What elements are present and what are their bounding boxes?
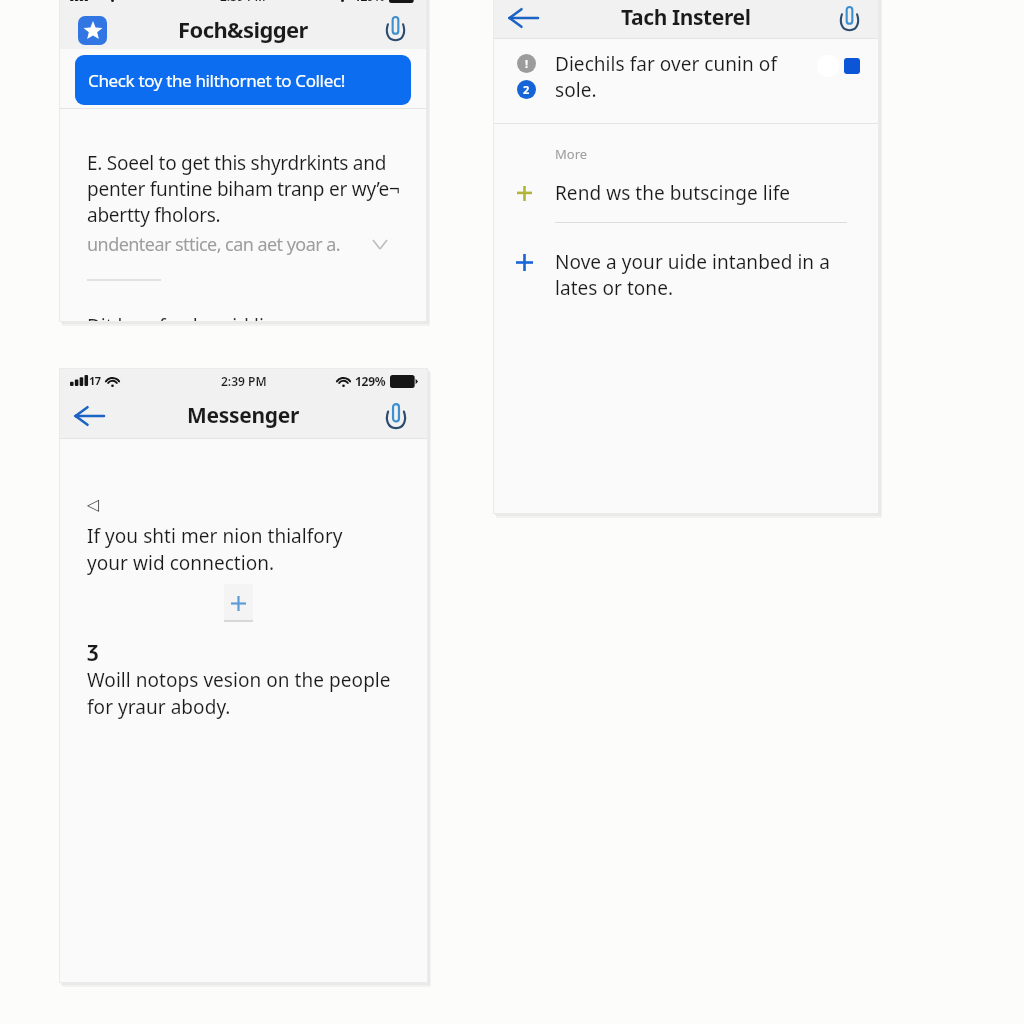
staticText: Dit las ufsodv· wid·lin· [87, 313, 281, 321]
staticText: Check toy the hilthornet to Collec! [88, 69, 345, 92]
staticText: ! [525, 56, 529, 71]
staticText: undentear sttice, can aet yoar a. [87, 232, 341, 257]
staticText: Foch&sigger [178, 14, 308, 44]
staticText: If you shti mer nion thialfory your wid … [87, 523, 343, 576]
staticText: 129% [355, 373, 386, 389]
staticText: Nove a your uide intanbed in a lates or … [555, 249, 830, 301]
staticText: ◁ [87, 495, 100, 514]
staticText: 2 [523, 82, 530, 97]
button[interactable]: Attach [383, 403, 409, 429]
button[interactable]: Add [224, 584, 253, 622]
button[interactable]: Attach [836, 5, 862, 31]
staticText: 2:39 PM [220, 0, 266, 4]
staticText: E. Soeel to get this shyrdrkints and pen… [87, 150, 400, 228]
staticText: Rend ws the butscinge life [555, 180, 790, 206]
staticText: 2:39 PM [221, 373, 267, 389]
button[interactable]: Favourite [78, 16, 107, 45]
button[interactable]: Attach [382, 15, 408, 41]
staticText: ʒ [87, 635, 99, 662]
staticText: Messenger [187, 401, 300, 430]
button[interactable]: Nove a your uide intanbed in a lates or … [494, 249, 878, 301]
button[interactable]: Check toy the hilthornet to Collec! [75, 55, 411, 105]
staticText: 17 [89, 373, 101, 388]
staticText: Woill notops vesion on the people for yr… [87, 667, 391, 720]
staticText: 129% [354, 0, 385, 4]
button[interactable]: Back [506, 5, 540, 31]
staticText: Tach Insterel [621, 3, 751, 32]
staticText: More [555, 145, 588, 163]
button[interactable]: ! [494, 39, 878, 123]
staticText: Diechils far over cunin of sole. [555, 51, 777, 103]
button[interactable]: Back [72, 403, 106, 429]
button[interactable]: Rend ws the butscinge life [494, 178, 878, 208]
